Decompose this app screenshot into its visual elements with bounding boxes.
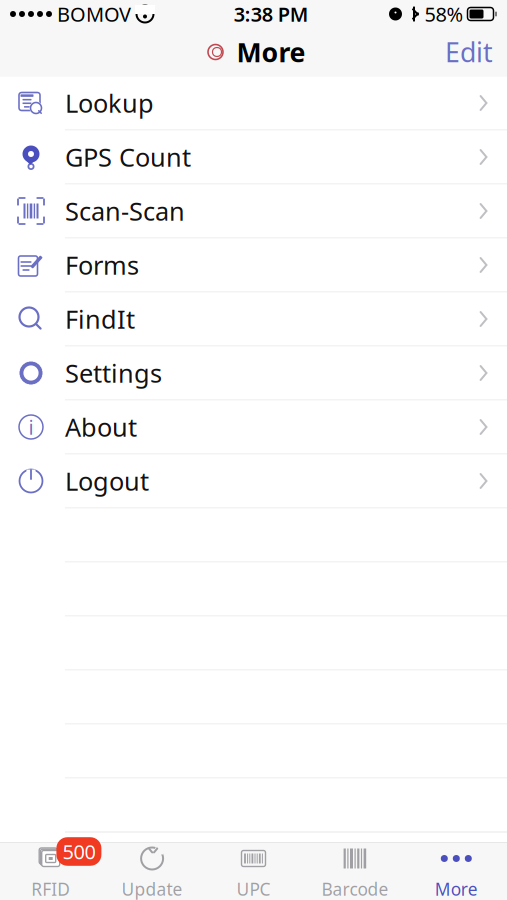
staticText: i — [28, 414, 33, 440]
button[interactable]: GPS Count — [0, 130, 507, 184]
staticText: More — [435, 877, 478, 900]
staticText: GPS Count — [65, 140, 191, 174]
staticText: About — [65, 410, 137, 444]
staticText: 500 — [62, 838, 95, 865]
button[interactable]: More — [406, 838, 507, 900]
staticText: FindIt — [65, 302, 135, 336]
staticText: Barcode — [321, 877, 388, 900]
button[interactable]: Forms — [0, 238, 507, 292]
button[interactable]: Barcode — [304, 838, 406, 900]
staticText: Edit — [445, 34, 493, 70]
button[interactable]: Settings — [0, 346, 507, 400]
staticText: Forms — [65, 248, 139, 282]
staticText: Update — [122, 877, 183, 900]
staticText: 58% — [424, 1, 463, 27]
button[interactable]: Lookup — [0, 76, 507, 130]
staticText: BOMOV — [57, 1, 131, 27]
staticText: 3:38 PM — [234, 1, 309, 27]
staticText: RFID — [31, 877, 70, 900]
button[interactable]: Edit — [431, 26, 507, 78]
staticText: Lookup — [65, 86, 154, 120]
button[interactable]: Scan-Scan — [0, 184, 507, 238]
button[interactable]: Logout — [0, 454, 507, 508]
staticText: Logout — [65, 464, 149, 498]
staticText: UPC — [236, 877, 270, 900]
button[interactable]: Update — [101, 838, 203, 900]
button[interactable]: FindIt — [0, 292, 507, 346]
button[interactable]: i — [0, 400, 507, 454]
button[interactable]: UPC — [203, 838, 304, 900]
button[interactable]: 500 — [0, 838, 101, 900]
staticText: More — [236, 34, 305, 70]
staticText: Settings — [65, 356, 162, 390]
staticText: Scan-Scan — [65, 194, 185, 228]
